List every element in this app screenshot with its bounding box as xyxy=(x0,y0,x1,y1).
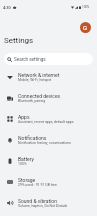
staticText: Search settings xyxy=(14,57,46,62)
button[interactable]: Account xyxy=(80,22,91,33)
button[interactable]: Sound and vibration xyxy=(0,192,97,213)
staticText: Storage xyxy=(18,177,36,183)
staticText: Mobile, Wi-Fi, hotspot xyxy=(18,78,52,82)
staticText: Notifications xyxy=(18,135,47,141)
button[interactable]: Network and internet xyxy=(0,66,97,87)
staticText: Settings xyxy=(4,36,34,45)
button[interactable]: Connected devices xyxy=(0,87,97,108)
staticText: Volume, haptics, Do Not Disturb xyxy=(18,204,68,208)
staticText: Battery xyxy=(18,156,34,162)
button[interactable]: Battery xyxy=(0,150,97,171)
staticText: Apps xyxy=(18,114,30,120)
staticText: G xyxy=(83,24,88,31)
button[interactable]: Apps xyxy=(0,108,97,129)
button[interactable]: Search settings xyxy=(4,53,93,65)
staticText: Assistant, recent apps, default apps xyxy=(18,120,74,124)
staticText: 4:30 xyxy=(3,5,11,10)
staticText: Connected devices xyxy=(18,93,61,99)
staticText: Sound & vibration xyxy=(18,198,57,204)
button[interactable]: Storage xyxy=(0,171,97,192)
staticText: 29% used - 91.91 GB free xyxy=(18,183,57,187)
staticText: Bluetooth, pairing xyxy=(18,99,46,103)
staticText: Notification history, conversations xyxy=(18,141,71,145)
staticText: 100% xyxy=(18,162,27,166)
button[interactable]: Notifications xyxy=(0,129,97,150)
staticText: Network & internet xyxy=(18,72,60,78)
staticText: 100% xyxy=(82,5,90,9)
